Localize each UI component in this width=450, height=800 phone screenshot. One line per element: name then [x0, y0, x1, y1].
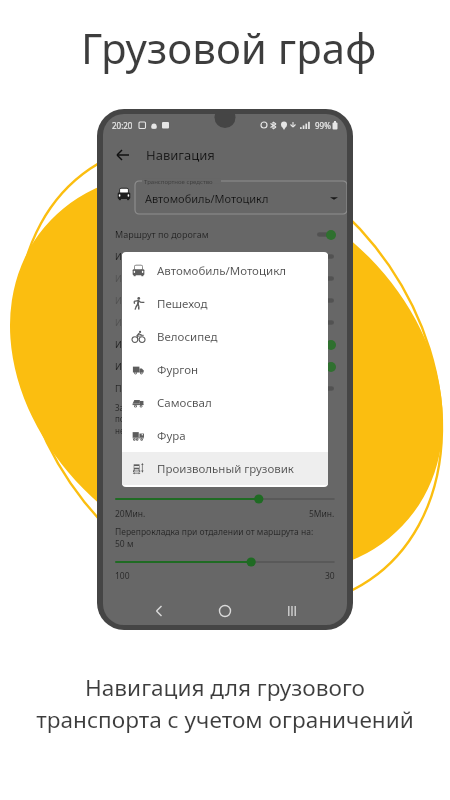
staticText: Предупреждать о камерах	[115, 382, 231, 394]
staticText: Перепрокладка при отдалении от маршрута …	[115, 526, 314, 550]
button[interactable]: Фура	[122, 419, 328, 452]
button[interactable]: Самосвал	[122, 386, 328, 419]
button[interactable]: Назад	[148, 600, 170, 622]
staticText: 99%	[315, 120, 331, 131]
staticText: Автомобиль/Мотоцикл	[145, 191, 269, 206]
staticText: 30	[325, 570, 335, 582]
staticText: Велосипед	[157, 329, 218, 345]
staticText: Избегать грунтовых дорог	[115, 272, 230, 284]
staticText: Использовать пробки	[115, 338, 211, 350]
staticText: Загрузка тайлов при приближении к точке …	[115, 402, 281, 437]
staticText: Грузовой граф	[81, 19, 377, 76]
staticText: Избегать туннелей	[115, 316, 198, 328]
staticText: Самосвал	[157, 395, 212, 411]
button[interactable]: Избегать туннелей	[115, 311, 336, 333]
staticText: 100	[115, 570, 130, 582]
button[interactable]: Пешеход	[122, 287, 328, 320]
staticText: Избегать платных дорог	[115, 250, 222, 262]
button[interactable]: Произвольный грузовик	[122, 452, 328, 485]
button[interactable]: Избегать платных дорог	[115, 245, 336, 267]
button[interactable]: Использовать рельеф	[115, 355, 336, 377]
staticText: Избегать паромов	[115, 294, 196, 306]
staticText: Фура	[157, 428, 186, 444]
staticText: Фургон	[157, 362, 199, 378]
staticText: 20:20	[112, 120, 133, 131]
button[interactable]: Велосипед	[122, 320, 328, 353]
staticText: Произвольный грузовик	[157, 461, 294, 477]
button[interactable]: Использовать пробки	[115, 333, 336, 355]
button[interactable]	[116, 493, 334, 505]
button[interactable]: Автомобиль/Мотоцикл	[122, 254, 328, 287]
button[interactable]	[116, 556, 334, 568]
staticText: 20Мин.	[115, 508, 146, 520]
button[interactable]: Домой	[214, 600, 236, 622]
button[interactable]: Избегать паромов	[115, 289, 336, 311]
staticText: Маршрут по дорогам	[115, 228, 209, 240]
staticText: Автомобиль/Мотоцикл	[157, 263, 286, 279]
staticText: Навигация	[146, 146, 215, 164]
staticText: Навигация для грузового транспорта с уче…	[36, 672, 414, 735]
staticText: Использовать рельеф	[115, 360, 211, 372]
button[interactable]: Предупреждать о камерах	[115, 377, 336, 399]
staticText: 5Мин.	[309, 508, 335, 520]
button[interactable]: Обзор	[281, 600, 303, 622]
staticText: Пешеход	[157, 296, 208, 312]
button[interactable]: Назад	[115, 147, 131, 163]
staticText: Транспортное средство	[144, 178, 213, 186]
button[interactable]: Фургон	[122, 353, 328, 386]
button[interactable]: Транспортное средство	[135, 178, 347, 214]
button[interactable]: Маршрут по дорогам	[115, 223, 336, 245]
button[interactable]: Избегать грунтовых дорог	[115, 267, 336, 289]
